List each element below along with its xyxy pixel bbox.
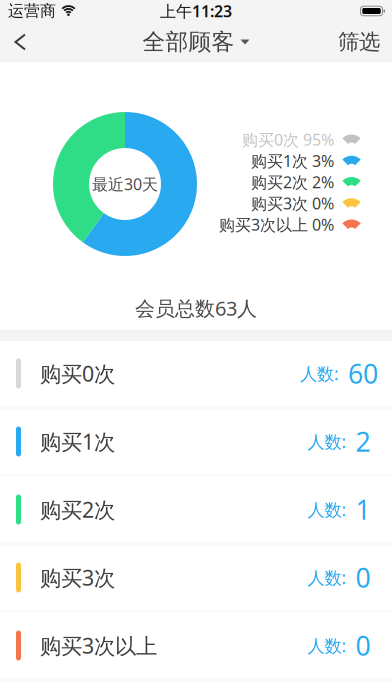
staticText: 购买3次: [40, 563, 115, 592]
staticText: 运营商: [8, 1, 56, 21]
button[interactable]: 购买1次: [0, 409, 392, 474]
button[interactable]: 购买2次: [0, 477, 392, 542]
staticText: 人数:: [307, 634, 346, 657]
staticText: 0: [355, 560, 370, 595]
staticText: 筛选: [338, 29, 380, 55]
staticText: 最近30天: [92, 173, 158, 195]
staticText: 购买2次: [40, 495, 115, 524]
staticText: 人数:: [307, 430, 346, 453]
staticText: 购买2次 2%: [251, 171, 334, 193]
staticText: 60: [348, 356, 378, 391]
button[interactable]: 全部顾客: [142, 28, 249, 56]
staticText: 0: [355, 628, 370, 663]
staticText: 全部顾客: [142, 28, 234, 56]
staticText: 购买3次以上 0%: [219, 214, 334, 235]
staticText: 2: [355, 424, 370, 459]
staticText: 1: [355, 492, 370, 527]
staticText: 购买0次 95%: [242, 129, 334, 150]
staticText: 购买3次以上: [40, 631, 157, 660]
staticText: 购买3次 0%: [251, 193, 334, 214]
button[interactable]: Back: [0, 22, 26, 61]
staticText: 上午11:23: [160, 0, 232, 22]
staticText: 会员总数63人: [135, 295, 257, 321]
button[interactable]: 购买0次: [0, 341, 392, 406]
button[interactable]: 购买3次: [0, 545, 392, 610]
staticText: 人数:: [307, 566, 346, 589]
staticText: 人数:: [307, 498, 346, 521]
staticText: 购买1次: [40, 427, 115, 456]
staticText: 购买0次: [40, 359, 115, 388]
button[interactable]: 购买3次以上: [0, 613, 392, 678]
staticText: 购买1次 3%: [251, 150, 334, 171]
staticText: 人数:: [300, 362, 339, 385]
button[interactable]: 筛选: [338, 19, 392, 65]
